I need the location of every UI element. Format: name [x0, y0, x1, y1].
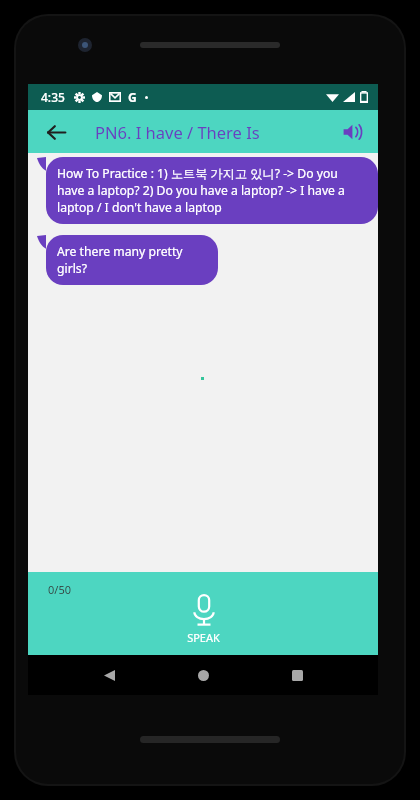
- button[interactable]: Back: [94, 660, 124, 690]
- button[interactable]: Are there many pretty girls?: [46, 235, 218, 285]
- button[interactable]: Home: [188, 660, 218, 690]
- staticText: 0/50: [48, 582, 71, 597]
- staticText: G: [128, 89, 137, 105]
- staticText: 4:35: [41, 89, 65, 105]
- staticText: How To Practice : 1) 노트북 가지고 있니? -> Do y…: [57, 165, 367, 216]
- button[interactable]: SPEAK: [163, 590, 244, 649]
- staticText: SPEAK: [187, 630, 220, 645]
- staticText: PN6. I have / There Is: [95, 121, 260, 143]
- button[interactable]: Recent apps: [282, 660, 312, 690]
- button[interactable]: Back: [36, 112, 76, 152]
- staticText: Are there many pretty girls?: [57, 243, 207, 277]
- button[interactable]: How To Practice : 1) 노트북 가지고 있니? -> Do y…: [46, 157, 378, 224]
- button[interactable]: Play sound: [332, 112, 372, 152]
